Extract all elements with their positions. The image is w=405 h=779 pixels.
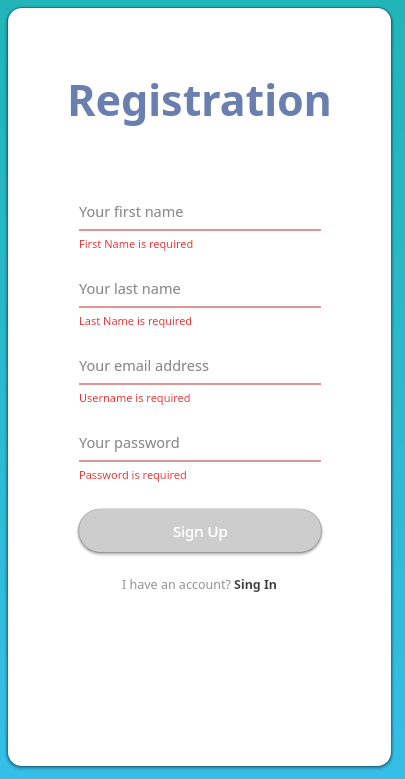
staticText: Last Name is required — [79, 313, 193, 328]
staticText: Your first name — [79, 201, 184, 221]
button[interactable]: Sign Up — [79, 509, 321, 552]
staticText: Your email address — [79, 355, 209, 375]
button[interactable]: Your email address — [79, 352, 321, 405]
staticText: Sign Up — [173, 521, 228, 541]
staticText: Password is required — [79, 467, 187, 482]
staticText: Your last name — [79, 278, 181, 298]
button[interactable]: I have an account? Sing In — [116, 574, 283, 595]
staticText: Your password — [79, 432, 180, 452]
button[interactable]: Your password — [79, 429, 321, 482]
button[interactable]: Your last name — [79, 275, 321, 328]
staticText: First Name is required — [79, 236, 194, 251]
button[interactable]: Your first name — [79, 198, 321, 251]
staticText: Username is required — [79, 390, 191, 405]
staticText: Registration — [67, 70, 332, 129]
staticText: I have an account? Sing In — [122, 576, 277, 593]
